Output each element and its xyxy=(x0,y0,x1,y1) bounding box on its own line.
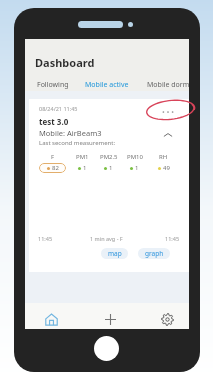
button[interactable]: PM2.5 xyxy=(95,150,122,172)
staticText: test 3.0 xyxy=(39,116,69,127)
button[interactable]: More options xyxy=(160,104,176,120)
button[interactable]: 82 xyxy=(39,163,66,173)
staticText: graph xyxy=(145,249,164,258)
staticText: 11:45 xyxy=(38,235,53,242)
staticText: Mobile active xyxy=(85,80,129,90)
staticText: 11:45 xyxy=(165,235,180,242)
staticText: PM2.5 xyxy=(100,153,118,161)
button[interactable]: Mobile active xyxy=(85,80,129,90)
button[interactable]: Mobile dorm xyxy=(147,80,190,90)
button[interactable]: Following xyxy=(37,80,69,90)
staticText: map xyxy=(108,249,122,258)
staticText: Dashboard xyxy=(35,55,95,70)
button[interactable]: Add session xyxy=(92,306,128,332)
staticText: Mobile dorm xyxy=(147,80,190,90)
staticText: 08/24/21 11:45 xyxy=(39,105,78,112)
button[interactable]: graph xyxy=(138,248,170,259)
staticText: 1 xyxy=(83,164,87,172)
staticText: 1 xyxy=(135,164,139,172)
staticText: 82 xyxy=(52,164,59,172)
staticText: RH xyxy=(159,153,168,161)
button[interactable]: Settings xyxy=(149,306,185,332)
staticText: PM10 xyxy=(127,153,143,161)
staticText: Mobile: AirBeam3 xyxy=(39,128,102,138)
button[interactable]: Collapse session xyxy=(160,127,176,143)
staticText: 1 min avg - F xyxy=(90,235,123,242)
staticText: PM1 xyxy=(76,153,89,161)
staticText: F xyxy=(51,153,55,161)
button[interactable]: PM1 xyxy=(69,150,96,172)
staticText: Last second measurement: xyxy=(39,139,115,147)
staticText: 49 xyxy=(163,164,170,172)
staticText: Following xyxy=(37,80,69,90)
button[interactable]: map xyxy=(101,248,128,259)
button[interactable]: PM10 xyxy=(121,150,148,172)
staticText: 1 xyxy=(109,164,113,172)
button[interactable]: Home xyxy=(33,306,69,332)
button[interactable]: RH xyxy=(150,150,177,172)
